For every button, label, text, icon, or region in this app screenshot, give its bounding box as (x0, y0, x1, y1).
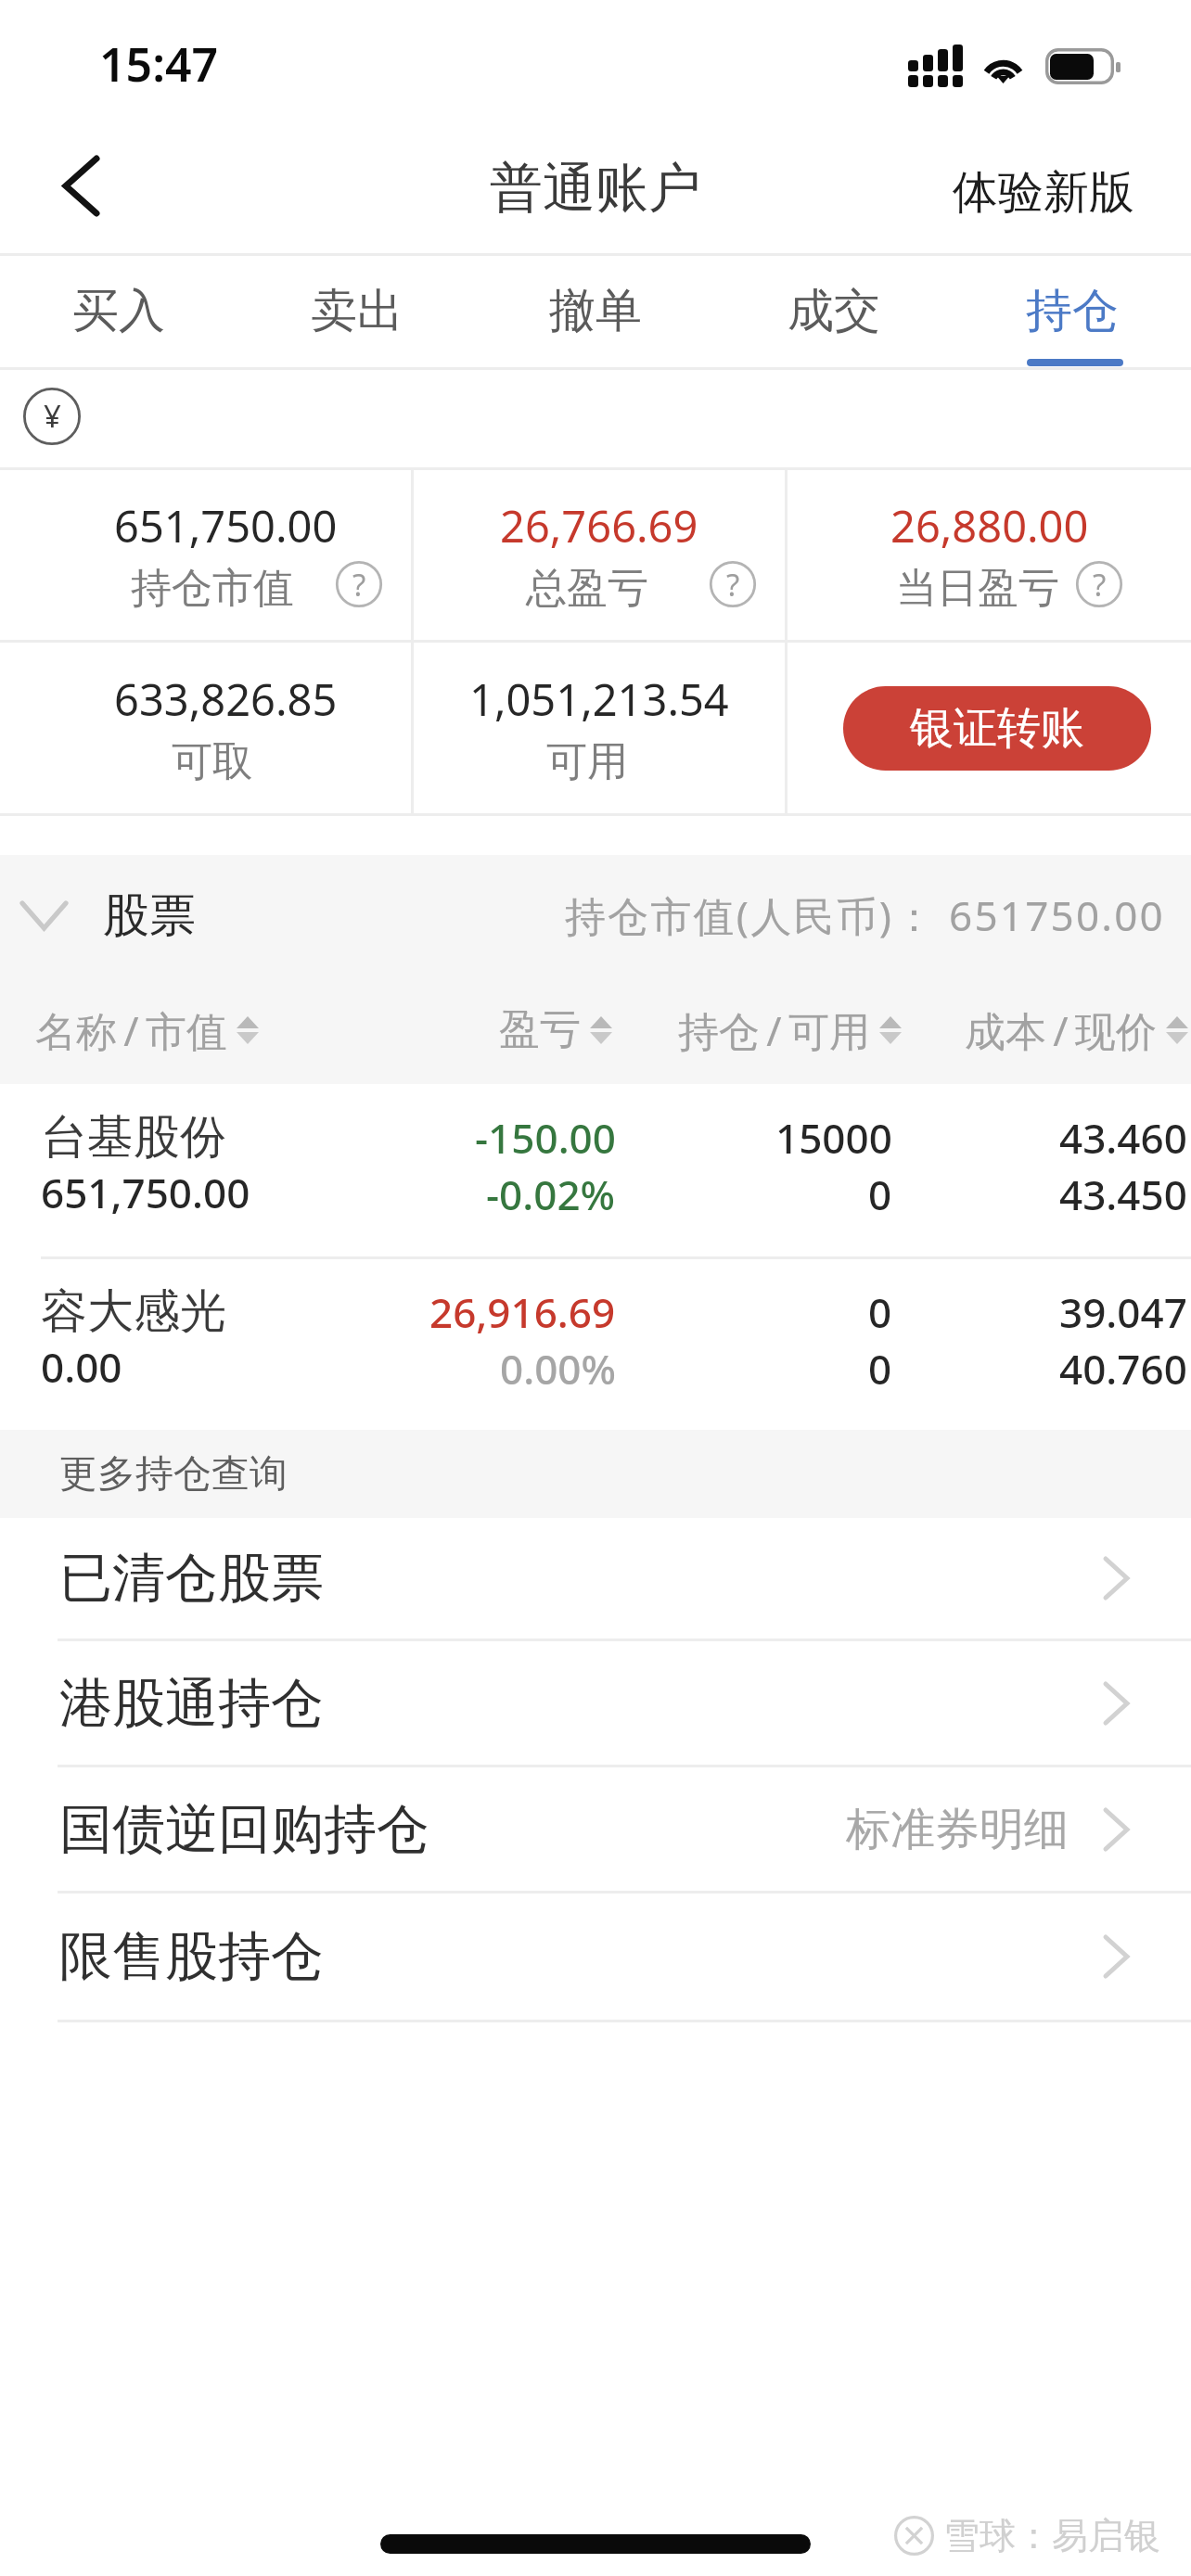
button[interactable]: 银证转账 (843, 686, 1151, 771)
staticText: 可取 (172, 736, 253, 787)
staticText: 0 (868, 1341, 892, 1396)
staticText: 雪球：易启银 (943, 2513, 1160, 2558)
staticText: 可用 (546, 736, 628, 787)
staticText: 国债逆回购持仓 (59, 1796, 429, 1863)
staticText: 持仓 (1026, 282, 1119, 340)
staticText: 1,051,213.54 (469, 670, 729, 729)
button[interactable]: 持仓 / 可用 (678, 1002, 902, 1058)
staticText: 43.460 (1059, 1110, 1187, 1166)
button[interactable]: 限售股持仓 (0, 1894, 1191, 2022)
button[interactable]: Info (710, 561, 756, 607)
button[interactable]: Info (336, 561, 382, 607)
staticText: 651,750.00 (41, 1165, 250, 1220)
button[interactable]: 1,051,213.54 (414, 643, 785, 813)
staticText: 普通账户 (490, 155, 701, 222)
staticText: -150.00 (475, 1110, 616, 1166)
button[interactable]: 持仓 (953, 256, 1191, 367)
button[interactable]: 卖出 (237, 256, 476, 367)
staticText: ? (1093, 564, 1107, 606)
staticText: 当日盈亏 (896, 563, 1059, 614)
staticText: 成交 (788, 282, 880, 340)
button[interactable]: 容大感光 (0, 1259, 1191, 1430)
button[interactable]: 台基股份 (0, 1084, 1191, 1259)
button[interactable]: 国债逆回购持仓 (0, 1767, 1191, 1894)
staticText: 43.450 (1059, 1167, 1187, 1222)
button[interactable]: 26,880.00 (788, 470, 1191, 640)
staticText: 股票 (103, 886, 196, 945)
staticText: 39.047 (1059, 1284, 1187, 1340)
staticText: ¥ (44, 395, 61, 437)
staticText: 651,750.00 (114, 496, 338, 555)
staticText: 撤单 (549, 282, 642, 340)
button[interactable]: Back (0, 111, 148, 253)
button[interactable]: 名称 / 市值 (35, 1002, 259, 1058)
button[interactable]: 已清仓股票 (0, 1518, 1191, 1641)
staticText: ? (726, 564, 740, 606)
staticText: 银证转账 (910, 701, 1084, 756)
staticText: 体验新版 (953, 164, 1134, 222)
button[interactable]: 651,750.00 (0, 470, 411, 640)
staticText: 26,916.69 (429, 1284, 616, 1340)
staticText: 40.760 (1059, 1341, 1187, 1396)
staticText: 持仓市值(人民币)： 651750.00 (565, 887, 1165, 943)
staticText: 0 (868, 1167, 892, 1222)
staticText: 更多持仓查询 (59, 1450, 288, 1498)
staticText: 成本 / 现价 (965, 1002, 1157, 1058)
button[interactable]: Info (1076, 561, 1122, 607)
staticText: 限售股持仓 (59, 1923, 324, 1990)
button[interactable]: 成本 / 现价 (965, 1002, 1188, 1058)
staticText: ? (352, 564, 366, 606)
button[interactable]: 体验新版 (953, 111, 1191, 253)
button[interactable]: 盈亏 (499, 1004, 612, 1055)
staticText: 持仓 / 可用 (678, 1002, 870, 1058)
staticText: 0.00% (500, 1341, 616, 1396)
button[interactable]: Currency CNY (12, 379, 92, 459)
staticText: 26,766.69 (500, 496, 698, 555)
button[interactable]: 撤单 (476, 256, 714, 367)
staticText: 15:47 (99, 32, 219, 96)
button[interactable]: 633,826.85 (0, 643, 411, 813)
staticText: 持仓市值 (131, 563, 294, 614)
staticText: 15000 (775, 1110, 892, 1166)
staticText: 633,826.85 (114, 670, 338, 729)
staticText: 卖出 (311, 282, 403, 340)
staticText: 盈亏 (499, 1004, 581, 1055)
staticText: 0 (868, 1284, 892, 1340)
staticText: 台基股份 (41, 1108, 226, 1167)
staticText: 已清仓股票 (59, 1545, 324, 1612)
staticText: 容大感光 (41, 1282, 226, 1341)
button[interactable]: 成交 (714, 256, 953, 367)
staticText: 标准券明细 (846, 1802, 1069, 1857)
staticText: 买入 (72, 282, 165, 340)
button[interactable]: 港股通持仓 (0, 1641, 1191, 1767)
staticText: -0.02% (486, 1167, 616, 1222)
staticText: 26,880.00 (890, 496, 1089, 555)
button[interactable]: 股票 (0, 855, 1191, 976)
button[interactable]: 26,766.69 (414, 470, 785, 640)
button[interactable]: 买入 (0, 256, 237, 367)
staticText: 港股通持仓 (59, 1670, 324, 1737)
staticText: 总盈亏 (526, 563, 648, 614)
staticText: 名称 / 市值 (35, 1002, 227, 1058)
staticText: 0.00 (41, 1339, 122, 1395)
